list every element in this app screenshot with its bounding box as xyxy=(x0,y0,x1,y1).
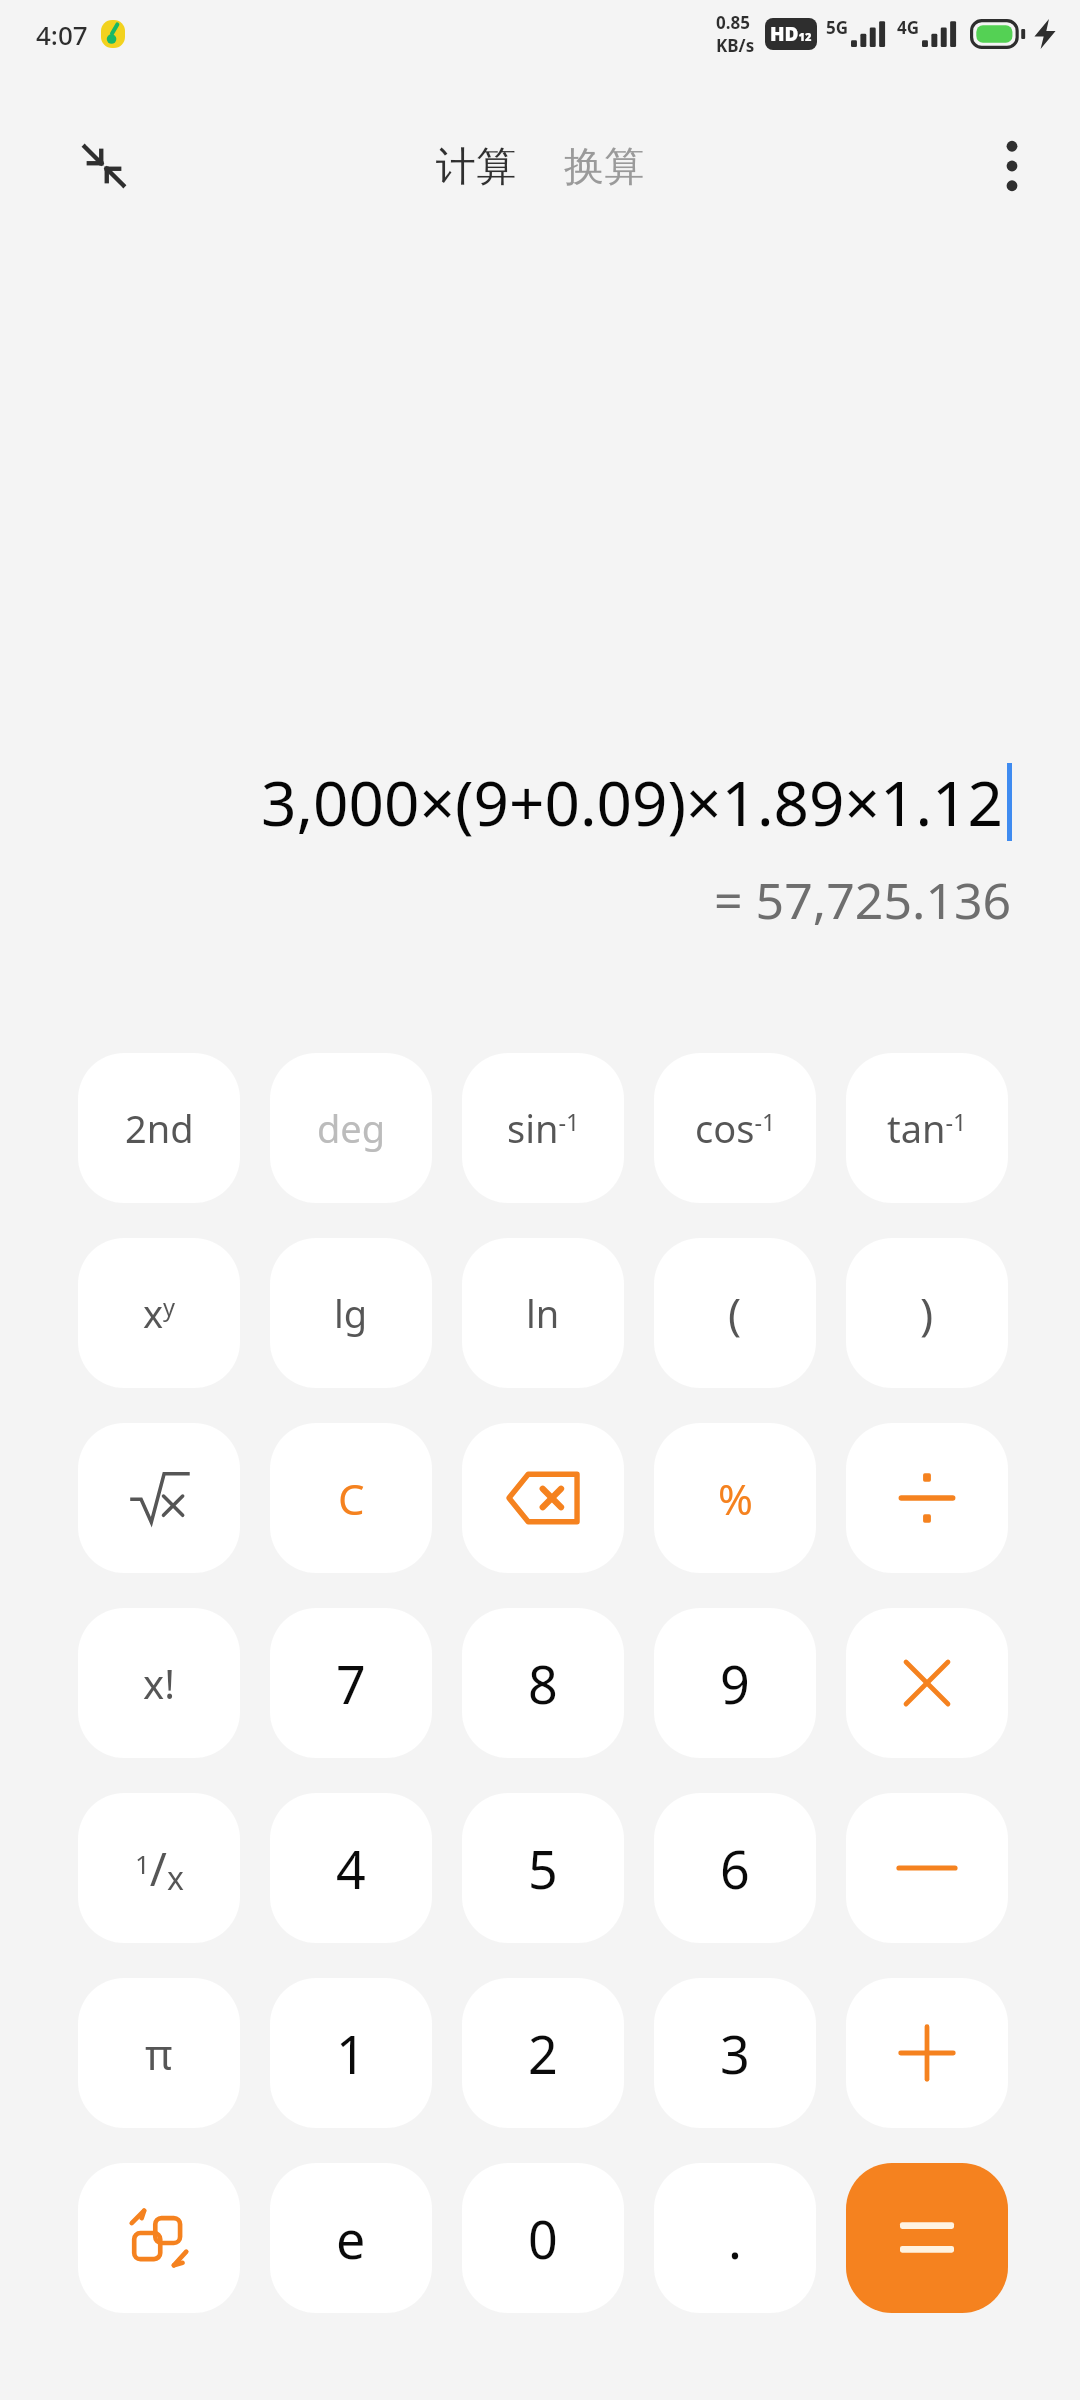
button[interactable]: x! xyxy=(78,1608,240,1758)
button[interactable]: Square root xyxy=(78,1423,240,1573)
button[interactable]: 2nd xyxy=(78,1053,240,1203)
staticText: 3 xyxy=(720,2018,750,2089)
staticText: HD12 xyxy=(770,21,812,47)
button[interactable]: deg xyxy=(270,1053,432,1203)
staticText: ln xyxy=(526,1287,560,1339)
button[interactable]: 3 xyxy=(654,1978,816,2128)
staticText: KB/s xyxy=(716,34,755,57)
staticText: π xyxy=(145,2025,173,2082)
button[interactable]: ln xyxy=(462,1238,624,1388)
staticText: = 57,725.136 xyxy=(714,866,1012,934)
staticText: tan-1 xyxy=(887,1102,967,1154)
staticText: 6 xyxy=(720,1833,750,1904)
button[interactable]: ( xyxy=(654,1238,816,1388)
staticText: % xyxy=(718,1470,753,1527)
staticText: e xyxy=(336,2203,366,2274)
staticText: C xyxy=(338,1470,365,1527)
staticText: lg xyxy=(334,1287,368,1339)
button[interactable]: Backspace xyxy=(462,1423,624,1573)
staticText: 1 xyxy=(336,2018,366,2089)
staticText: 0 xyxy=(528,2203,558,2274)
staticText: 4G xyxy=(897,16,920,39)
button[interactable]: 9 xyxy=(654,1608,816,1758)
button[interactable]: 1 xyxy=(270,1978,432,2128)
staticText: xy xyxy=(143,1287,176,1339)
staticText: ( xyxy=(728,1283,742,1343)
button[interactable]: xy xyxy=(78,1238,240,1388)
staticText: cos-1 xyxy=(695,1102,776,1154)
button[interactable]: Divide xyxy=(846,1423,1008,1573)
staticText: 4 xyxy=(336,1833,366,1904)
button[interactable]: 8 xyxy=(462,1608,624,1758)
button[interactable]: 6 xyxy=(654,1793,816,1943)
staticText: 3,000×(9+0.09)×1.89×1.12 xyxy=(261,760,1004,844)
button[interactable]: 2 xyxy=(462,1978,624,2128)
staticText: 8 xyxy=(528,1648,558,1719)
staticText: x! xyxy=(143,1656,175,1710)
staticText: 4:07 xyxy=(36,17,88,52)
staticText: 9 xyxy=(720,1648,750,1719)
staticText: deg xyxy=(317,1102,386,1154)
staticText: 换算 xyxy=(564,141,644,191)
button[interactable]: More options xyxy=(970,124,1054,208)
button[interactable]: . xyxy=(654,2163,816,2313)
staticText: ) xyxy=(920,1283,934,1343)
button[interactable]: cos-1 xyxy=(654,1053,816,1203)
button[interactable]: 换算 xyxy=(554,131,654,201)
button[interactable]: 0 xyxy=(462,2163,624,2313)
button[interactable]: Plus xyxy=(846,1978,1008,2128)
staticText: 2nd xyxy=(125,1102,194,1154)
button[interactable]: 计算 xyxy=(426,131,526,201)
button[interactable]: tan-1 xyxy=(846,1053,1008,1203)
button[interactable]: Minus xyxy=(846,1793,1008,1943)
button[interactable]: Equals xyxy=(846,2163,1008,2313)
staticText: . xyxy=(728,2203,742,2274)
button[interactable]: sin-1 xyxy=(462,1053,624,1203)
button[interactable]: π xyxy=(78,1978,240,2128)
staticText: 7 xyxy=(336,1648,366,1719)
staticText: 1/x xyxy=(135,1837,184,1900)
button[interactable]: lg xyxy=(270,1238,432,1388)
button[interactable]: 5 xyxy=(462,1793,624,1943)
staticText: sin-1 xyxy=(507,1102,580,1154)
button[interactable]: Random xyxy=(78,2163,240,2313)
button[interactable]: C xyxy=(270,1423,432,1573)
staticText: 5G xyxy=(826,16,849,39)
button[interactable]: One over x xyxy=(78,1793,240,1943)
button[interactable]: Multiply xyxy=(846,1608,1008,1758)
button[interactable]: 4 xyxy=(270,1793,432,1943)
staticText: 计算 xyxy=(436,141,516,191)
button[interactable]: e xyxy=(270,2163,432,2313)
button[interactable]: % xyxy=(654,1423,816,1573)
button[interactable]: Collapse xyxy=(62,124,146,208)
staticText: 0.85 xyxy=(716,11,750,34)
button[interactable]: 7 xyxy=(270,1608,432,1758)
button[interactable]: ) xyxy=(846,1238,1008,1388)
staticText: 5 xyxy=(528,1833,558,1904)
staticText: 2 xyxy=(528,2018,558,2089)
